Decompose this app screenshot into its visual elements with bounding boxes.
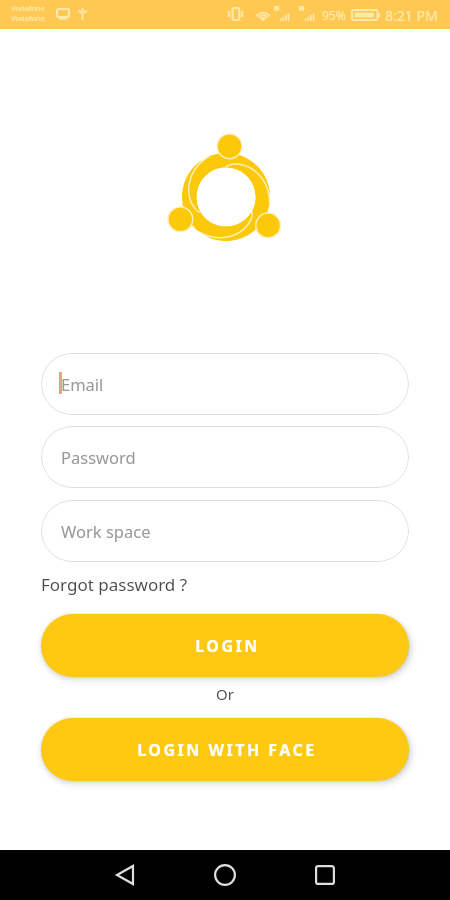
staticText: Vodafone [11, 3, 45, 13]
staticText: 8:21 PM [385, 6, 438, 25]
button[interactable]: Work space [41, 500, 409, 562]
staticText: Forgot password ? [41, 573, 188, 596]
staticText: Password [61, 446, 136, 468]
button[interactable]: LOGIN WITH FACE [41, 718, 409, 781]
button[interactable]: Password [41, 426, 409, 488]
staticText: 95% [322, 7, 346, 23]
staticText: Email [61, 373, 104, 395]
button[interactable]: Back [101, 851, 149, 899]
staticText: Vodafone [11, 13, 45, 23]
staticText: Work space [61, 520, 151, 542]
button[interactable]: Home [201, 851, 249, 899]
staticText: LOGIN WITH FACE [137, 739, 317, 761]
button[interactable]: Forgot password ? [41, 572, 188, 597]
staticText: Or [216, 684, 234, 704]
button[interactable]: Recent apps [301, 851, 349, 899]
staticText: LOGIN [195, 635, 260, 657]
button[interactable]: LOGIN [41, 614, 409, 677]
button[interactable]: Email [41, 353, 409, 415]
